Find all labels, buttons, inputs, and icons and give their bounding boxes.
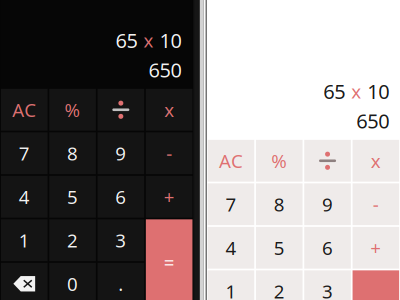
staticText: 5 [67, 184, 78, 209]
button[interactable]: 1 [207, 269, 255, 300]
staticText: 65 [323, 78, 345, 105]
button[interactable] [303, 139, 352, 182]
staticText: - [373, 192, 379, 217]
staticText: 10 [367, 78, 389, 105]
button[interactable]: % [48, 88, 97, 131]
button[interactable]: 6 [303, 226, 352, 269]
staticText: AC [219, 148, 243, 173]
staticText: 650 [148, 57, 181, 83]
staticText: 10 [159, 27, 181, 54]
staticText: + [164, 184, 175, 209]
staticText: 9 [322, 192, 333, 217]
staticText: % [65, 97, 81, 122]
button[interactable]: + [145, 175, 193, 218]
button[interactable]: 9 [97, 131, 145, 175]
staticText: 9 [115, 141, 126, 166]
button[interactable]: 7 [207, 182, 255, 226]
staticText: 6 [115, 184, 126, 209]
staticText: AC [12, 97, 36, 122]
staticText: 0 [67, 271, 78, 296]
staticText: 2 [67, 228, 78, 253]
button[interactable]: + [352, 226, 400, 269]
button[interactable] [97, 88, 145, 131]
staticText: 650 [356, 108, 389, 134]
staticText: x [164, 97, 174, 122]
staticText: 3 [115, 228, 126, 253]
button[interactable]: x [352, 139, 400, 182]
button[interactable]: - [352, 182, 400, 226]
button[interactable]: 5 [48, 175, 97, 218]
button[interactable]: AC [0, 88, 48, 131]
staticText: % [271, 148, 287, 173]
staticText: 7 [19, 141, 30, 166]
staticText: 1 [19, 228, 30, 253]
staticText: 2 [274, 279, 285, 300]
button[interactable]: 8 [48, 131, 97, 175]
button[interactable]: AC [207, 139, 255, 182]
button[interactable] [0, 262, 48, 300]
staticText: 3 [322, 279, 333, 300]
staticText: 6 [322, 235, 333, 260]
staticText: 5 [274, 235, 285, 260]
staticText: 8 [274, 192, 285, 217]
button[interactable]: 4 [207, 226, 255, 269]
staticText: 1 [225, 279, 236, 300]
button[interactable]: = [352, 269, 400, 300]
button[interactable]: 0 [48, 262, 97, 300]
staticText: x [351, 79, 361, 104]
staticText: x [143, 28, 153, 53]
staticText: 4 [19, 184, 30, 209]
button[interactable]: 8 [255, 182, 303, 226]
button[interactable]: 3 [303, 269, 352, 300]
staticText: 65 [115, 27, 137, 54]
staticText: 7 [225, 192, 236, 217]
button[interactable]: 9 [303, 182, 352, 226]
button[interactable]: = [145, 218, 193, 300]
staticText: = [164, 250, 175, 274]
staticText: + [370, 235, 381, 260]
button[interactable]: 7 [0, 131, 48, 175]
button[interactable]: 2 [48, 218, 97, 262]
staticText: x [371, 148, 381, 173]
button[interactable]: % [255, 139, 303, 182]
button[interactable]: x [145, 88, 193, 131]
button[interactable]: 6 [97, 175, 145, 218]
button[interactable]: 3 [97, 218, 145, 262]
button[interactable]: 5 [255, 226, 303, 269]
button[interactable]: . [97, 262, 145, 300]
button[interactable]: 1 [0, 218, 48, 262]
staticText: - [166, 141, 172, 166]
staticText: 4 [225, 235, 236, 260]
button[interactable]: - [145, 131, 193, 175]
button[interactable]: 4 [0, 175, 48, 218]
staticText: . [118, 271, 123, 296]
staticText: 8 [67, 141, 78, 166]
button[interactable]: 2 [255, 269, 303, 300]
